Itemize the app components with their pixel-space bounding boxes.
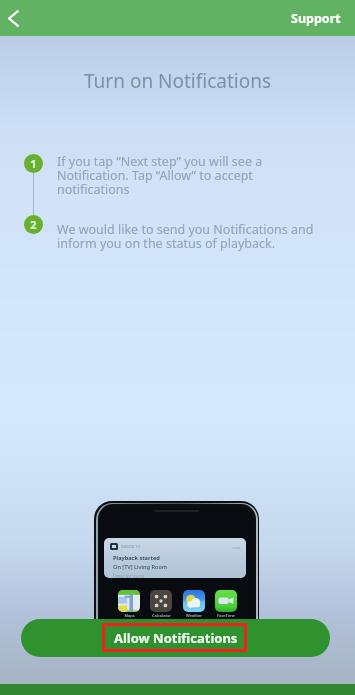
staticText: 2 (30, 217, 37, 232)
staticText: FaceTime (217, 613, 235, 618)
staticText: MEDIA TV (121, 544, 141, 550)
staticText: If you tap “Next step” you will see a No… (57, 153, 263, 198)
staticText: On [TV] Living Room (113, 563, 168, 571)
staticText: Allow Notifications (114, 629, 238, 647)
staticText: Calculator (152, 613, 171, 618)
staticText: now (232, 545, 241, 551)
staticText: Support (291, 10, 341, 27)
button[interactable]: Support (276, 3, 355, 34)
button[interactable]: Back (0, 3, 28, 33)
staticText: Playback started (113, 554, 160, 562)
staticText: Press for more (113, 573, 145, 578)
button[interactable]: Allow Notifications (21, 619, 330, 657)
staticText: Weather (186, 613, 202, 618)
staticText: 1 (30, 156, 37, 171)
staticText: Turn on Notifications (84, 68, 272, 94)
staticText: We would like to send you Notifications … (57, 221, 314, 252)
staticText: Maps (124, 613, 135, 618)
